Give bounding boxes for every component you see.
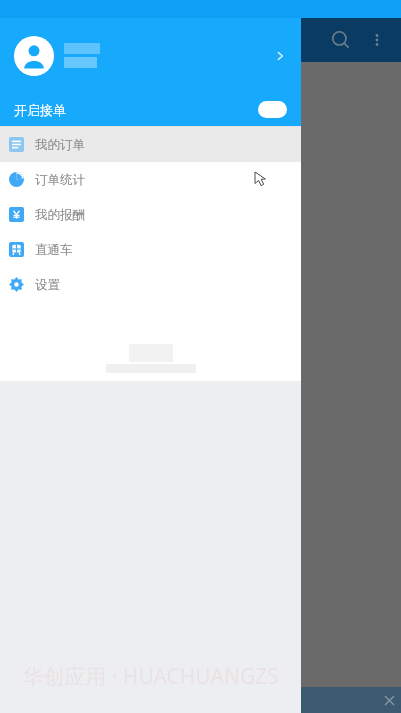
staticText: 开启接单: [14, 102, 66, 118]
other: Pointer: [255, 172, 269, 186]
button[interactable]: 订单统计: [0, 162, 301, 197]
button[interactable]: More options: [361, 24, 393, 56]
button[interactable]: Search: [321, 20, 361, 60]
staticText: 我的报酬: [35, 207, 85, 223]
staticText: 订单统计: [35, 172, 85, 188]
staticText: 设置: [35, 277, 60, 293]
button[interactable]: 设置: [0, 267, 301, 302]
staticText: .COM: [4, 656, 55, 683]
button[interactable]: [0, 18, 301, 93]
button[interactable]: Close: [377, 688, 401, 712]
button[interactable]: 我的订单: [0, 127, 301, 162]
button[interactable]: 我的报酬: [0, 197, 301, 232]
staticText: 华创应用 · HUACHUANGZS: [22, 662, 279, 691]
button[interactable]: 开启接单: [0, 93, 301, 126]
staticText: 直通车: [35, 242, 73, 258]
button[interactable]: 直通车: [0, 232, 301, 267]
staticText: 我的订单: [35, 137, 85, 153]
